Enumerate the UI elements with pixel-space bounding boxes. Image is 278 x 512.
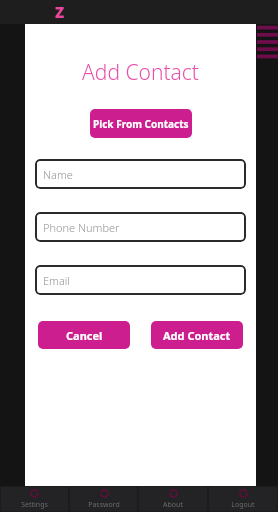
staticText: Password: [88, 500, 120, 510]
button[interactable]: Settings: [1, 487, 68, 511]
button[interactable]: Logout: [209, 487, 277, 511]
staticText: Pick From Contacts: [93, 117, 189, 131]
staticText: Logout: [231, 500, 255, 510]
button[interactable]: Pick From Contacts: [90, 109, 192, 138]
button[interactable]: Cancel: [38, 321, 130, 349]
staticText: Add Contact: [82, 58, 199, 87]
staticText: Email: [43, 273, 70, 288]
staticText: Cancel: [66, 328, 103, 343]
staticText: Z: [55, 2, 65, 22]
staticText: About: [163, 500, 183, 510]
button[interactable]: Phone Number: [35, 212, 246, 242]
other: Menu: [257, 24, 278, 60]
staticText: Name: [43, 167, 73, 182]
staticText: Phone Number: [43, 220, 120, 235]
button[interactable]: Email: [35, 265, 246, 295]
button[interactable]: Name: [35, 159, 246, 189]
button[interactable]: Home: [48, 0, 72, 24]
button[interactable]: Password: [70, 487, 137, 511]
staticText: Add Contact: [163, 328, 231, 343]
staticText: Settings: [21, 500, 48, 510]
button[interactable]: Add Contact: [151, 321, 243, 349]
button[interactable]: About: [139, 487, 207, 511]
